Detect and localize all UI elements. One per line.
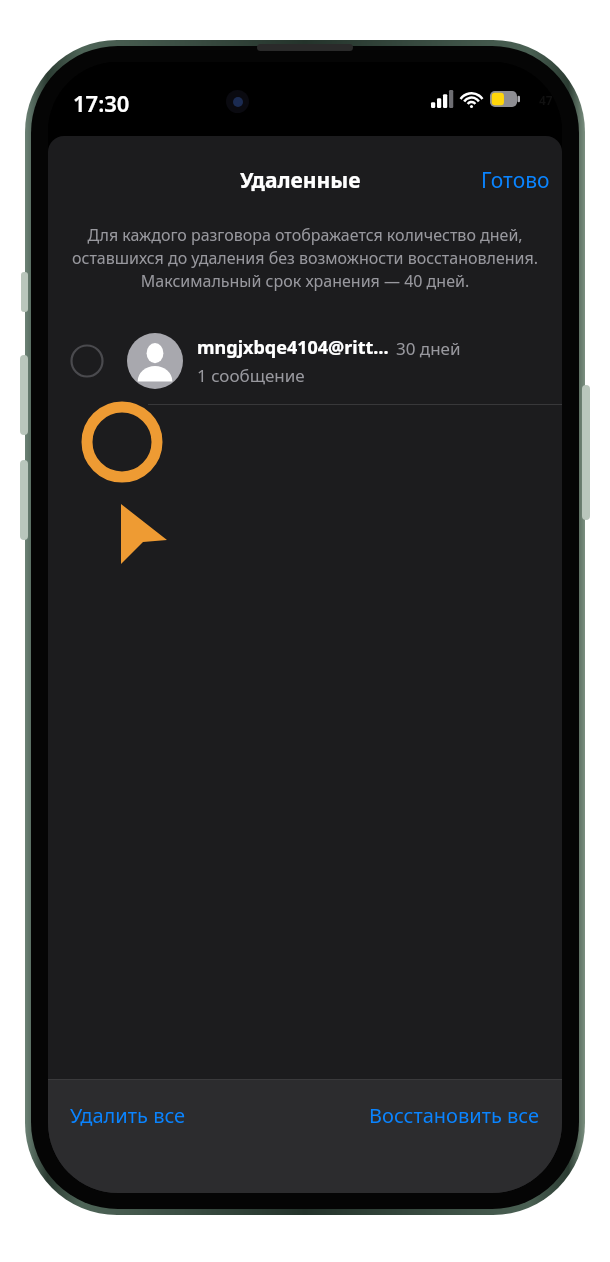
staticText: 1 сообщение — [197, 364, 305, 387]
staticText: Восстановить все — [369, 1102, 540, 1129]
other: Выбрать разговор — [70, 344, 104, 378]
staticText: Удаленные — [240, 166, 361, 195]
staticText: Готово — [481, 166, 550, 195]
staticText: Удалить все — [70, 1102, 186, 1129]
button[interactable]: Выбрать разговор — [48, 318, 562, 404]
button[interactable]: Удалить все — [56, 1094, 200, 1137]
staticText: 17:30 — [73, 88, 130, 118]
staticText: 47 — [539, 92, 553, 108]
staticText: 30 дней — [396, 337, 461, 360]
button[interactable]: Готово — [469, 160, 562, 201]
button[interactable]: Восстановить все — [355, 1094, 554, 1137]
staticText: mngjxbqe4104@ritt… — [197, 335, 389, 360]
staticText: Для каждого разговора отображается колич… — [70, 224, 540, 292]
